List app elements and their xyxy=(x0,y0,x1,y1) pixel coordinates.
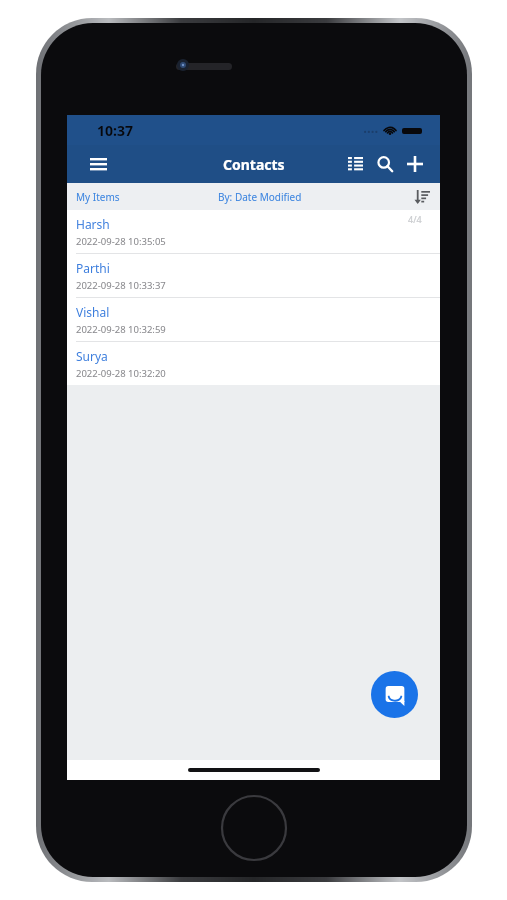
button[interactable]: List view xyxy=(340,149,370,179)
staticText: 2022-09-28 10:32:20 xyxy=(76,367,166,380)
button[interactable]: Surya xyxy=(67,342,440,385)
button[interactable]: New message xyxy=(371,671,418,718)
button[interactable]: Search xyxy=(370,149,400,179)
staticText: Parthi xyxy=(76,260,110,276)
button[interactable]: Add xyxy=(400,149,430,179)
button[interactable]: Sort xyxy=(410,185,434,209)
button[interactable]: Parthi xyxy=(67,254,440,298)
button[interactable]: Harsh xyxy=(67,210,440,254)
staticText: 2022-09-28 10:32:59 xyxy=(76,323,166,336)
staticText: Contacts xyxy=(223,155,285,174)
staticText: 2022-09-28 10:33:37 xyxy=(76,279,166,292)
button[interactable]: By: Date Modified xyxy=(218,190,302,204)
button[interactable]: Vishal xyxy=(67,298,440,342)
staticText: Harsh xyxy=(76,216,110,232)
staticText: 2022-09-28 10:35:05 xyxy=(76,235,166,248)
staticText: 10:37 xyxy=(97,121,133,140)
button[interactable]: My Items xyxy=(76,190,120,204)
staticText: 4/4 xyxy=(408,213,422,225)
button[interactable]: Menu xyxy=(81,147,115,181)
staticText: Vishal xyxy=(76,304,110,320)
staticText: Surya xyxy=(76,348,108,364)
